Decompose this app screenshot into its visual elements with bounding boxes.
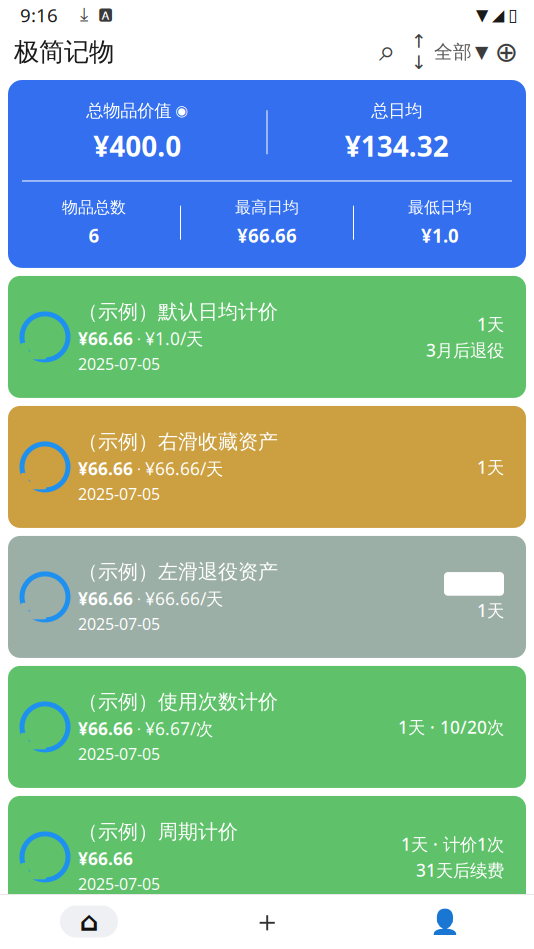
staticText: 总日均 [371,100,422,121]
staticText: 1天 · 计价1次 [401,832,504,855]
staticText: 总物品价值 [86,100,171,121]
staticText: ⤓ [80,6,88,24]
staticText: ¥134.32 [345,127,449,164]
staticText: 9:16 [20,3,58,27]
staticText: 31天后续费 [416,858,504,881]
staticText: ¥1.0/天 [145,327,203,350]
button[interactable]: 搜索 [370,35,404,69]
staticText: 1天 [477,312,504,335]
button[interactable]: 我的 [356,895,534,947]
button[interactable]: 全部 [434,35,488,69]
staticText: 1天 [477,455,504,478]
staticText: · [137,329,141,348]
staticText: ¥66.66 [78,457,133,480]
staticText: ＋ [252,903,281,939]
staticText: 物品总数 [62,197,126,217]
staticText: （示例）使用次数计价 [78,689,278,714]
staticText: 1天 [477,599,504,622]
button[interactable]: 添加 [488,35,524,69]
staticText: （示例）默认日均计价 [78,299,278,324]
staticText: ¥66.66 [237,223,297,248]
staticText: 2025-07-05 [78,743,160,764]
staticText: 3月后退役 [426,338,504,361]
staticText: 2025-07-05 [78,483,160,504]
button[interactable]: （示例）使用次数计价 [8,666,526,788]
staticText: 极简记物 [14,36,114,67]
staticText: 🅰 [98,7,113,23]
staticText: ▯ [508,5,518,25]
staticText: ▼ [476,6,488,24]
staticText: ⊕ [494,36,517,68]
staticText: ¥66.66 [78,717,133,740]
staticText: 最高日均 [235,197,299,217]
staticText: 最低日均 [408,197,472,217]
staticText: （示例）右滑收藏资产 [78,429,278,454]
staticText: · [137,589,141,608]
staticText: （示例）左滑退役资产 [78,559,278,584]
button[interactable]: 首页 [0,895,178,947]
staticText: ¥66.66 [78,327,133,350]
staticText: 6 [88,223,99,248]
staticText: ⌂ [79,906,98,937]
button[interactable]: 添加物品 [178,895,356,947]
staticText: 全部 [434,40,472,63]
staticText: 👤 [430,908,460,935]
button[interactable]: （示例）默认日均计价 [8,276,526,398]
staticText: ¥66.66/天 [145,457,223,480]
staticText: 2025-07-05 [78,353,160,374]
staticText: ◢ [492,6,504,24]
staticText: 2025-07-05 [78,873,160,894]
staticText: ↑↓ [411,31,427,73]
staticText: 2025-07-05 [78,613,160,634]
button[interactable]: （示例）左滑退役资产 [8,536,526,658]
staticText: ¥1.0 [421,223,459,248]
staticText: （示例）周期计价 [78,819,238,844]
staticText: ¥66.66/天 [145,587,223,610]
staticText: · [137,459,141,478]
staticText: ¥400.0 [93,127,181,164]
staticText: 1天 · 10/20次 [398,715,504,738]
staticText: · [137,719,141,738]
button[interactable]: （示例）右滑收藏资产 [8,406,526,528]
staticText: ⌕ [379,38,395,66]
staticText: ◉ [175,102,188,119]
staticText: ▼ [475,42,488,62]
button[interactable]: （示例）周期计价 [8,796,526,918]
staticText: ¥66.66 [78,847,133,870]
button[interactable]: 排序 [404,35,434,69]
staticText: ¥66.66 [78,587,133,610]
staticText: ¥6.67/次 [145,717,213,740]
